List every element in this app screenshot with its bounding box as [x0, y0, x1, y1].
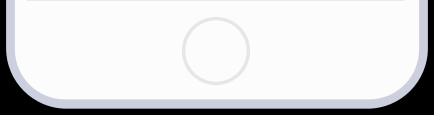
button[interactable]: Home — [0, 0, 434, 115]
